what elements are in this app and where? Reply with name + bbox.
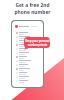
- staticText: Get a free 2nd phone number: [14, 2, 51, 16]
- button[interactable]: Keep your personal number private: [24, 37, 50, 48]
- staticText: Keep your personal number private: [25, 39, 50, 46]
- button[interactable]: Phone preview: [12, 21, 43, 87]
